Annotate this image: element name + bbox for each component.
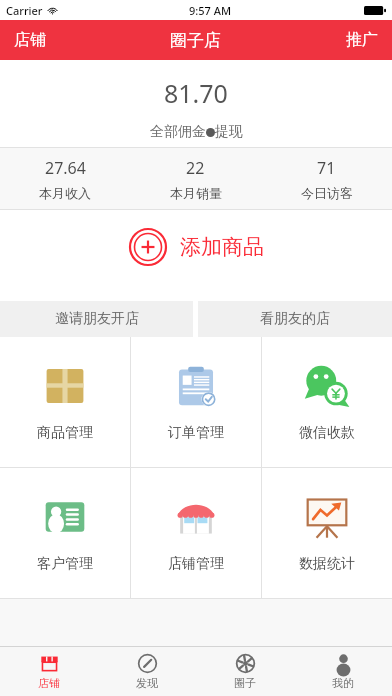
button[interactable]: 邀请朋友开店	[0, 301, 193, 337]
button[interactable]: 我的	[294, 647, 392, 696]
button[interactable]: 微信收款	[262, 337, 392, 467]
staticText: 81.70	[164, 76, 228, 110]
button[interactable]: 店铺管理	[131, 468, 261, 598]
button[interactable]: 看朋友的店	[198, 301, 392, 337]
button[interactable]: 发现	[98, 647, 196, 696]
staticText: 发现	[136, 676, 158, 690]
staticText: 店铺管理	[168, 555, 224, 573]
staticText: 本月销量	[170, 185, 222, 201]
staticText: 店铺	[14, 30, 46, 50]
button[interactable]: 推广	[332, 20, 392, 60]
staticText: 22	[186, 157, 205, 179]
button[interactable]: 店铺	[0, 20, 60, 60]
staticText: 圈子	[234, 676, 256, 690]
button[interactable]: 71	[261, 148, 392, 209]
staticText: 客户管理	[37, 555, 93, 573]
button[interactable]: 81.70	[0, 60, 392, 147]
staticText: 9:57 AM	[189, 3, 232, 18]
staticText: 邀请朋友开店	[55, 310, 139, 328]
staticText: 27.64	[45, 157, 86, 179]
staticText: 店铺	[38, 676, 60, 690]
staticText: 添加商品	[180, 234, 264, 260]
staticText: 提现	[215, 123, 243, 141]
staticText: 71	[317, 157, 336, 179]
button[interactable]: 27.64	[0, 148, 130, 209]
staticText: 订单管理	[168, 424, 224, 442]
button[interactable]: 22	[130, 148, 261, 209]
staticText: 数据统计	[299, 555, 355, 573]
staticText: 微信收款	[299, 424, 355, 442]
button[interactable]: 圈子	[196, 647, 294, 696]
staticText: 商品管理	[37, 424, 93, 442]
button[interactable]: 数据统计	[262, 468, 392, 598]
button[interactable]: 商品管理	[0, 337, 130, 467]
button[interactable]: 订单管理	[131, 337, 261, 467]
button[interactable]: 客户管理	[0, 468, 130, 598]
staticText: 今日访客	[301, 185, 353, 201]
button[interactable]: 添加商品	[0, 210, 392, 284]
staticText: Carrier	[6, 3, 43, 18]
staticText: 看朋友的店	[260, 310, 330, 328]
staticText: 我的	[332, 676, 354, 690]
staticText: 推广	[346, 30, 378, 50]
staticText: 圈子店	[170, 30, 221, 51]
staticText: 本月收入	[39, 185, 91, 201]
staticText: 全部佣金	[150, 123, 206, 141]
button[interactable]: 店铺	[0, 647, 98, 696]
